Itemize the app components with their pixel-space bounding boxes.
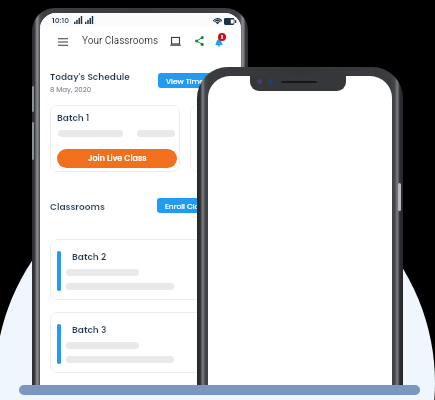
staticText: 1 — [221, 33, 224, 41]
staticText: View Timetable — [166, 76, 224, 86]
staticText: 10:10 — [52, 15, 70, 25]
staticText: Batch 2 — [72, 251, 107, 264]
staticText: Enroll Classroom — [165, 201, 228, 211]
staticText: Join Live Class — [88, 153, 147, 164]
staticText: Batch 1 — [197, 112, 230, 125]
button[interactable]: Batch 2 — [50, 239, 230, 300]
button[interactable]: Batch 3 — [50, 312, 230, 373]
button[interactable]: Batch 1 — [50, 105, 180, 172]
staticText: 8 May, 2020 — [50, 85, 92, 95]
staticText: Batch 1 — [57, 112, 90, 125]
button[interactable]: Devices — [167, 33, 183, 49]
staticText: Classrooms — [50, 201, 105, 214]
button[interactable]: Notifications — [213, 31, 230, 48]
staticText: Batch 3 — [72, 324, 107, 337]
staticText: Join Live Class — [198, 153, 241, 164]
staticText: Your Classrooms — [82, 35, 159, 47]
button[interactable]: Share — [191, 33, 207, 49]
button[interactable]: Menu — [55, 34, 71, 50]
button[interactable]: View Timetable — [158, 73, 232, 88]
staticText: Today's Schedule — [50, 71, 130, 84]
button[interactable]: Join Live Class — [57, 149, 177, 168]
button[interactable]: Join Live Class — [197, 149, 241, 168]
button[interactable]: Batch 1 — [190, 105, 241, 172]
button[interactable]: Enroll Classroom — [157, 198, 236, 213]
